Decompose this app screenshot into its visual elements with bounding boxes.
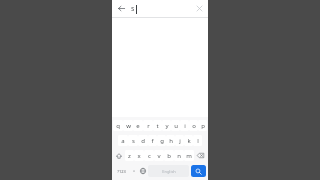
- staticText: English: [162, 169, 176, 174]
- staticText: j: [179, 137, 181, 145]
- button[interactable]: Clear: [193, 2, 206, 15]
- button[interactable]: u: [171, 120, 180, 131]
- button[interactable]: Shift: [113, 150, 125, 161]
- button[interactable]: p: [198, 120, 207, 131]
- staticText: k: [187, 137, 191, 145]
- button[interactable]: z: [125, 150, 134, 161]
- button[interactable]: l: [193, 135, 202, 146]
- button[interactable]: n: [174, 150, 184, 161]
- button[interactable]: Change language: [138, 164, 147, 178]
- staticText: d: [141, 137, 145, 145]
- button[interactable]: e: [133, 120, 143, 131]
- button[interactable]: w: [123, 120, 133, 131]
- button[interactable]: a: [118, 135, 128, 146]
- button[interactable]: Backspace: [194, 150, 207, 161]
- button[interactable]: v: [154, 150, 164, 161]
- button[interactable]: b: [164, 150, 174, 161]
- button[interactable]: x: [134, 150, 144, 161]
- staticText: i: [184, 122, 186, 130]
- staticText: u: [174, 122, 178, 130]
- button[interactable]: f: [148, 135, 157, 146]
- staticText: x: [137, 152, 141, 160]
- staticText: s: [131, 4, 135, 14]
- button[interactable]: q: [113, 120, 123, 131]
- button[interactable]: s: [131, 0, 193, 17]
- button[interactable]: m: [184, 150, 194, 161]
- button[interactable]: English: [148, 165, 189, 177]
- staticText: v: [157, 152, 161, 160]
- button[interactable]: d: [138, 135, 148, 146]
- button[interactable]: t: [153, 120, 162, 131]
- staticText: y: [165, 122, 169, 130]
- button[interactable]: j: [175, 135, 184, 146]
- staticText: t: [156, 122, 159, 130]
- button[interactable]: c: [144, 150, 154, 161]
- staticText: e: [136, 122, 140, 130]
- button[interactable]: Comma: [129, 164, 138, 178]
- button[interactable]: ?123: [114, 165, 128, 177]
- button[interactable]: y: [162, 120, 171, 131]
- staticText: z: [128, 152, 131, 160]
- staticText: c: [148, 152, 151, 160]
- button[interactable]: s: [128, 135, 138, 146]
- button[interactable]: i: [180, 120, 189, 131]
- button[interactable]: g: [157, 135, 166, 146]
- staticText: b: [167, 152, 171, 160]
- button[interactable]: o: [189, 120, 198, 131]
- button[interactable]: h: [166, 135, 175, 146]
- staticText: a: [121, 137, 125, 145]
- staticText: q: [116, 122, 120, 130]
- button[interactable]: r: [143, 120, 153, 131]
- staticText: r: [147, 122, 150, 130]
- button[interactable]: k: [184, 135, 193, 146]
- staticText: g: [160, 137, 164, 145]
- staticText: m: [186, 152, 192, 160]
- staticText: l: [197, 137, 199, 145]
- staticText: w: [126, 122, 131, 130]
- staticText: n: [177, 152, 181, 160]
- button[interactable]: Search: [191, 165, 206, 177]
- button[interactable]: Back: [115, 2, 128, 15]
- staticText: p: [201, 122, 205, 130]
- staticText: h: [169, 137, 173, 145]
- staticText: f: [151, 137, 154, 145]
- staticText: ?123: [117, 169, 126, 174]
- staticText: s: [132, 137, 135, 145]
- staticText: o: [192, 122, 196, 130]
